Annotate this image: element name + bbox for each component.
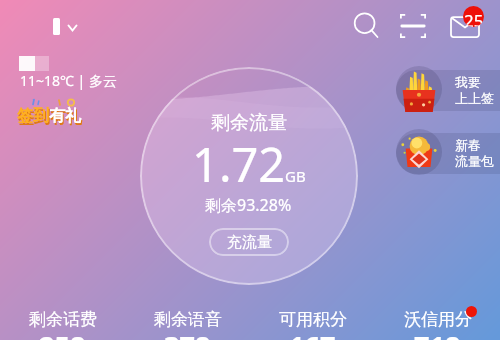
staticText: 167	[289, 327, 336, 340]
staticText: 我要	[455, 74, 481, 90]
staticText: 剩余流量	[211, 111, 287, 135]
staticText: 剩余语音	[154, 309, 222, 330]
button[interactable]: 沃信用分	[375, 309, 500, 340]
button[interactable]	[396, 133, 500, 174]
staticText: 258	[39, 327, 86, 340]
staticText: 新春	[455, 137, 481, 153]
button[interactable]: 充流量	[209, 228, 289, 256]
staticText: 沃信用分	[404, 309, 472, 330]
button[interactable]: Scan	[400, 14, 426, 38]
staticText: 25	[464, 9, 484, 27]
staticText: 剩余93.28%	[205, 194, 292, 216]
staticText: 签到	[18, 108, 50, 128]
button[interactable]: 剩余语音	[125, 309, 250, 340]
staticText: 有礼	[49, 106, 81, 126]
staticText: 剩余话费	[29, 309, 97, 330]
button[interactable]	[396, 70, 500, 111]
staticText: 流量包	[455, 153, 494, 169]
staticText: 有礼	[50, 108, 82, 128]
button[interactable]: 签到	[17, 106, 81, 126]
button[interactable]: 可用积分	[250, 309, 375, 340]
staticText: 充流量	[227, 233, 272, 252]
button[interactable]: Messages	[446, 4, 486, 42]
staticText: 11~18℃ | 多云	[20, 71, 117, 90]
button[interactable]: 剩余流量	[140, 67, 358, 285]
staticText: 可用积分	[279, 309, 347, 330]
staticText: 1.72	[192, 132, 286, 196]
staticText: GB	[285, 166, 306, 186]
button[interactable]: 剩余话费	[0, 309, 125, 340]
button[interactable]: Switch account	[40, 10, 88, 42]
staticText: 718	[414, 327, 461, 340]
staticText: 上上签	[455, 90, 494, 106]
staticText: 签到	[17, 106, 49, 126]
button[interactable]: Search	[350, 9, 380, 39]
staticText: 378	[164, 327, 211, 340]
